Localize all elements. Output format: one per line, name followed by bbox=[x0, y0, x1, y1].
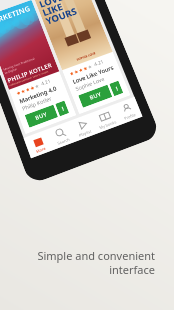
staticText: Profile bbox=[123, 112, 137, 121]
button[interactable]: Store bbox=[24, 132, 53, 156]
staticText: Marketing 4.0 bbox=[18, 85, 58, 105]
button[interactable]: Profile bbox=[113, 99, 142, 123]
button[interactable]: MARKETING 4.0 bbox=[0, 0, 76, 134]
button[interactable]: Playlist bbox=[69, 115, 97, 139]
staticText: 4.21 bbox=[40, 78, 52, 87]
staticText: Philip Kotler bbox=[21, 94, 53, 112]
staticText: My books bbox=[98, 119, 118, 130]
button[interactable]: Search bbox=[47, 123, 75, 148]
button[interactable]: My books bbox=[91, 107, 120, 131]
staticText: Love Like Yours bbox=[72, 64, 115, 86]
button[interactable]: BUY bbox=[78, 85, 112, 108]
staticText: Sophie Love bbox=[74, 75, 106, 92]
button[interactable]: More options bbox=[55, 100, 69, 116]
staticText: Search bbox=[57, 137, 71, 146]
staticText: LOVE LIKE YOURS bbox=[37, 0, 79, 27]
staticText: BUY bbox=[88, 90, 103, 102]
staticText: Store bbox=[35, 146, 46, 154]
staticText: 4.21 bbox=[93, 58, 105, 68]
staticText: Simple and convenient interface bbox=[37, 248, 155, 277]
button[interactable]: More options bbox=[109, 80, 123, 96]
staticText: BUY bbox=[34, 110, 49, 122]
button[interactable]: LOVE LIKE YOURS bbox=[34, 0, 131, 114]
staticText: Playlist bbox=[78, 128, 93, 138]
staticText: SOPHIE LOVE bbox=[76, 51, 96, 62]
staticText: HERMAWAN KARTAJAYA IWAN SETIAWAN bbox=[9, 70, 49, 87]
button[interactable]: BUY bbox=[25, 105, 58, 128]
staticText: PHILIP KOTLER bbox=[6, 61, 53, 85]
staticText: Moving from Traditional to Digital bbox=[3, 57, 37, 75]
staticText: MARKETING 4.0 bbox=[0, 3, 35, 34]
